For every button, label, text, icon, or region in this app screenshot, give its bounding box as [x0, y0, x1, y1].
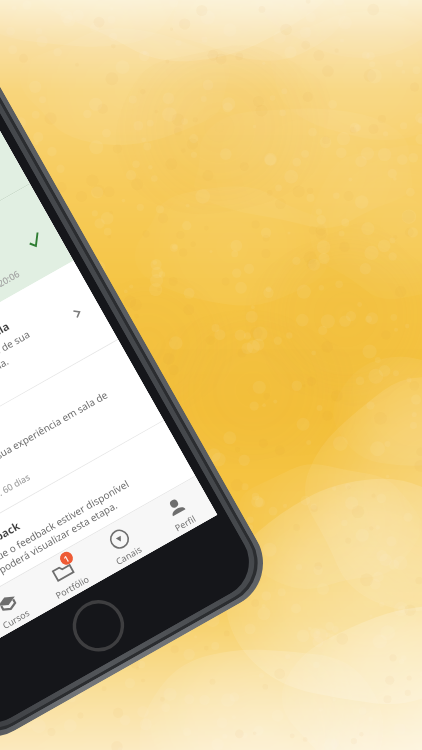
staticText: Feedback [0, 518, 23, 557]
staticText: Canais [113, 543, 143, 567]
other: Abrir aula [70, 306, 85, 321]
staticText: Registre como foi a sua experiência em s… [0, 387, 110, 508]
staticText: você poderá visualizar esta etapa. [0, 498, 120, 588]
staticText: aula. [0, 354, 11, 377]
staticText: 1 [62, 552, 71, 564]
staticText: Assim que o feedback estiver disponível [0, 477, 131, 581]
button[interactable]: Feedback [0, 421, 195, 603]
staticText: Cursos [0, 606, 32, 631]
button[interactable]: Cursos [0, 572, 48, 642]
staticText: Assista à videoaula da aula [0, 318, 12, 404]
button[interactable]: Canais [82, 509, 161, 579]
staticText: Portfólio [53, 572, 91, 601]
staticText: Prazo: 60 dias [0, 470, 32, 509]
button[interactable]: Check-in realizado na aula [0, 184, 73, 388]
button[interactable]: Atividade [0, 340, 163, 547]
staticText: Perfil [172, 512, 197, 533]
button[interactable]: 1 [27, 541, 104, 610]
staticText: Clique aqui e assista o vídeo de sua [0, 327, 33, 421]
button[interactable]: Perfil [139, 477, 217, 547]
button[interactable]: Assista à videoaula da aula [0, 261, 118, 466]
staticText: Concluído às 20:06 [0, 267, 22, 317]
other: Concluido [26, 232, 44, 249]
